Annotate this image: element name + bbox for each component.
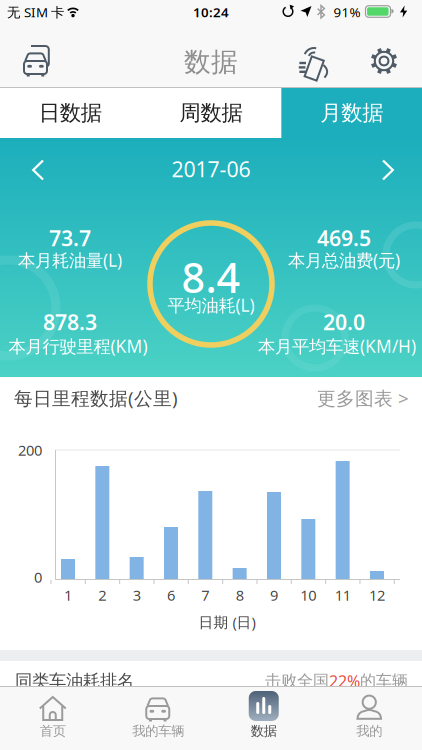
staticText: 0 xyxy=(34,567,42,587)
button[interactable]: 同类车油耗排名 xyxy=(0,661,422,686)
staticText: 的车辆 xyxy=(360,671,408,691)
staticText: 10:24 xyxy=(193,3,229,21)
staticText: 9 xyxy=(270,585,278,605)
staticText: 10 xyxy=(300,585,316,605)
staticText: 2 xyxy=(98,585,106,605)
button[interactable]: 远程控制 xyxy=(297,43,335,83)
staticText: 我的车辆 xyxy=(132,723,184,739)
staticText: 周数据 xyxy=(179,100,242,126)
staticText: 12 xyxy=(369,585,385,605)
staticText: 每日里程数据(公里) xyxy=(14,386,178,410)
button[interactable]: 下一月 xyxy=(380,160,394,179)
staticText: 击败全国 xyxy=(265,671,329,691)
staticText: 本月总油费(元) xyxy=(288,248,400,271)
staticText: 2017-06 xyxy=(171,155,250,183)
staticText: 20.0 xyxy=(323,308,365,336)
button[interactable]: 设置 xyxy=(369,46,399,76)
staticText: 更多图表 > xyxy=(317,386,409,410)
staticText: 200 xyxy=(18,440,42,460)
staticText: 平均油耗(L) xyxy=(167,293,254,316)
staticText: 3 xyxy=(133,585,141,605)
staticText: 本月平均车速(KM/H) xyxy=(258,334,416,357)
staticText: 22% xyxy=(329,670,360,692)
staticText: 我的 xyxy=(356,723,382,739)
staticText: 本月行驶里程(KM) xyxy=(8,334,147,357)
button[interactable]: 周数据 xyxy=(141,88,281,138)
staticText: 首页 xyxy=(40,723,66,739)
staticText: 日数据 xyxy=(39,100,102,126)
staticText: 月数据 xyxy=(320,100,383,126)
staticText: 7 xyxy=(201,585,209,605)
button[interactable]: 我的车辆 xyxy=(105,686,211,750)
staticText: 11 xyxy=(335,585,351,605)
button[interactable]: 月数据 xyxy=(281,88,422,138)
staticText: 数据 xyxy=(184,46,238,78)
button[interactable]: 上一月 xyxy=(32,160,46,179)
staticText: 无 SIM 卡 xyxy=(7,3,64,21)
staticText: 8.4 xyxy=(181,250,240,304)
button[interactable]: 数据 xyxy=(211,686,316,750)
staticText: 8 xyxy=(236,585,244,605)
staticText: 日期 (日) xyxy=(198,612,255,632)
staticText: 6 xyxy=(167,585,175,605)
staticText: 1 xyxy=(64,585,72,605)
button[interactable]: 首页 xyxy=(0,686,105,750)
button[interactable]: 我的 xyxy=(316,686,422,750)
staticText: 73.7 xyxy=(49,224,91,252)
staticText: 数据 xyxy=(251,723,277,739)
staticText: 878.3 xyxy=(43,308,97,336)
button[interactable]: 日数据 xyxy=(0,88,141,138)
staticText: 91% xyxy=(333,3,360,21)
staticText: 同类车油耗排名 xyxy=(15,670,134,692)
staticText: 本月耗油量(L) xyxy=(18,248,122,271)
staticText: 469.5 xyxy=(317,224,371,252)
button[interactable]: 更多图表 > xyxy=(317,386,409,410)
button[interactable]: 切换车辆 xyxy=(21,43,57,77)
